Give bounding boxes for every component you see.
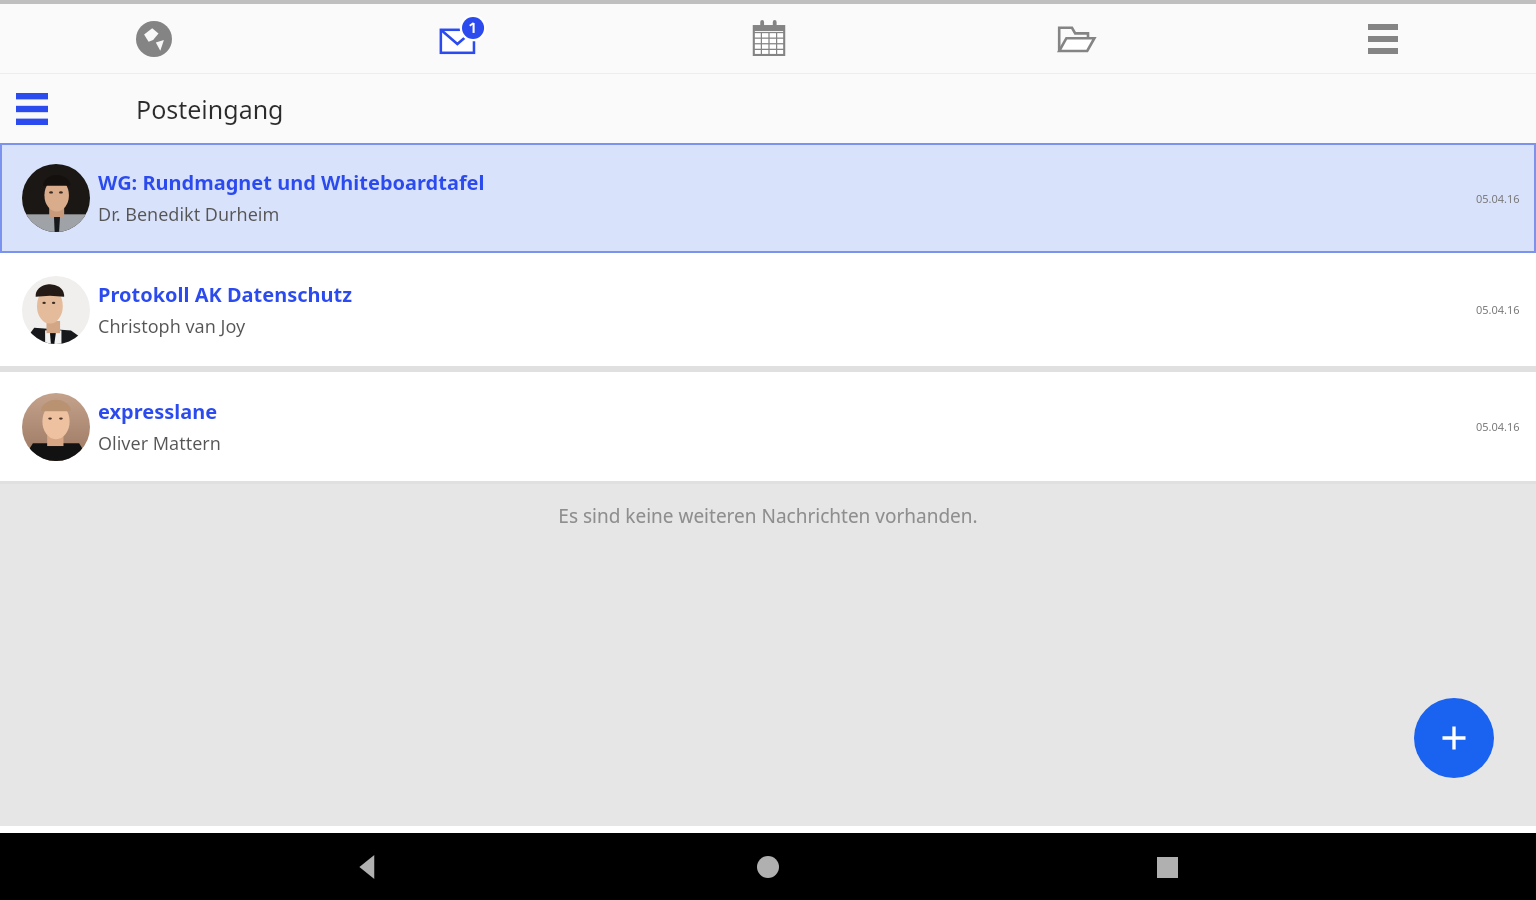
button[interactable]: expresslane bbox=[0, 372, 1536, 481]
button[interactable]: Files bbox=[922, 4, 1229, 73]
button[interactable]: Protokoll AK Datenschutz bbox=[0, 253, 1536, 366]
button[interactable]: Open navigation drawer bbox=[10, 87, 54, 131]
button[interactable]: Mail, 1 unread bbox=[308, 4, 615, 73]
button[interactable]: Compose new message bbox=[1414, 698, 1494, 778]
staticText: Oliver Mattern bbox=[98, 431, 221, 456]
button[interactable]: Home bbox=[738, 837, 798, 897]
button[interactable]: Calendar bbox=[615, 4, 922, 73]
staticText: expresslane bbox=[98, 398, 218, 425]
button[interactable]: Back bbox=[339, 837, 399, 897]
staticText: Christoph van Joy bbox=[98, 314, 246, 339]
staticText: 05.04.16 bbox=[1476, 419, 1520, 434]
staticText: 05.04.16 bbox=[1476, 191, 1520, 206]
staticText: Posteingang bbox=[136, 92, 284, 126]
button[interactable]: More options bbox=[1229, 4, 1536, 73]
button[interactable]: Recent apps bbox=[1137, 837, 1197, 897]
staticText: Es sind keine weiteren Nachrichten vorha… bbox=[0, 503, 1536, 529]
staticText: 05.04.16 bbox=[1476, 302, 1520, 317]
button[interactable]: Web bbox=[0, 4, 308, 73]
staticText: Protokoll AK Datenschutz bbox=[98, 281, 353, 308]
button[interactable]: WG: Rundmagnet und Whiteboardtafel bbox=[0, 143, 1536, 253]
staticText: WG: Rundmagnet und Whiteboardtafel bbox=[98, 169, 485, 196]
staticText: Dr. Benedikt Durheim bbox=[98, 202, 280, 227]
